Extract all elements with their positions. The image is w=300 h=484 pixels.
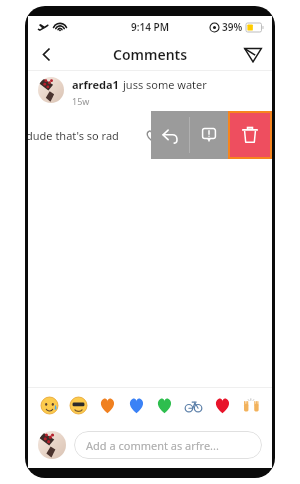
staticText: 9:14 PM (131, 20, 169, 34)
button[interactable]: Sunglasses face (67, 394, 89, 416)
button[interactable]: dude that's so rad (28, 111, 161, 159)
button[interactable]: Orange heart (96, 394, 118, 416)
button[interactable]: Reply (151, 111, 189, 159)
staticText: Comments (113, 45, 188, 64)
button[interactable]: Red heart (211, 394, 233, 416)
button[interactable]: Report (190, 111, 228, 159)
staticText: arfreda1 (72, 77, 119, 92)
button[interactable]: Blue heart (125, 394, 147, 416)
staticText: 15w (72, 95, 90, 107)
staticText: juss some water (123, 77, 207, 92)
button[interactable]: arfreda1 (28, 71, 272, 111)
button[interactable]: Green heart (153, 394, 175, 416)
staticText: Add a comment as arfre... (86, 438, 219, 453)
button[interactable]: Share (234, 38, 272, 70)
button[interactable]: Back (28, 38, 64, 70)
button[interactable]: Delete (230, 113, 270, 157)
staticText: dude that's so rad (26, 128, 119, 143)
button[interactable]: Like (141, 125, 161, 145)
button[interactable]: Cry face (38, 394, 60, 416)
button[interactable]: Add a comment as arfre... (74, 431, 262, 459)
staticText: 39% (222, 20, 243, 34)
button[interactable]: Raising hands (240, 394, 262, 416)
button[interactable]: Bicycle (182, 394, 204, 416)
